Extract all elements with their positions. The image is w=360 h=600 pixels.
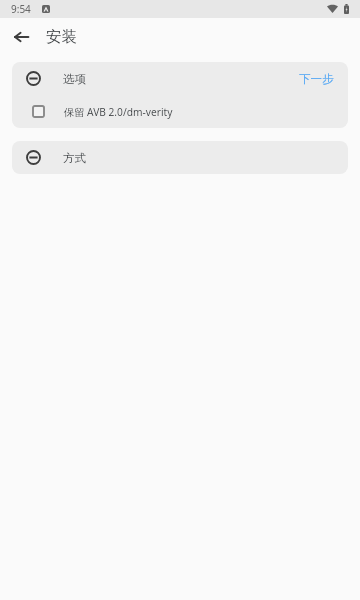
staticText: 选项	[63, 72, 86, 86]
button[interactable]: 下一步	[285, 62, 348, 95]
button[interactable]: Back	[5, 21, 37, 53]
staticText: 保留 AVB 2.0/dm-verity	[64, 105, 173, 119]
staticText: 方式	[63, 151, 86, 165]
staticText: 下一步	[299, 72, 334, 86]
button[interactable]: 选项	[12, 62, 285, 95]
staticText: 9:54	[11, 2, 31, 16]
button[interactable]: 方式	[12, 141, 348, 174]
staticText: 安装	[46, 27, 77, 47]
button[interactable]: 保留 AVB 2.0/dm-verity	[12, 95, 348, 128]
